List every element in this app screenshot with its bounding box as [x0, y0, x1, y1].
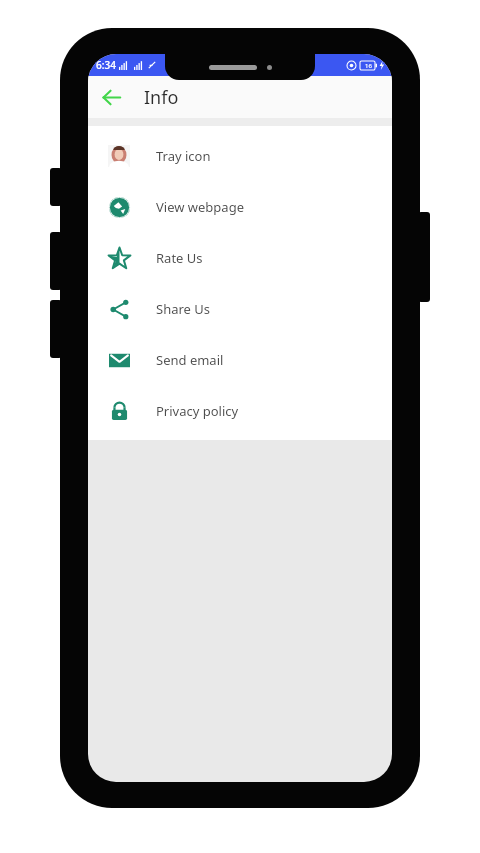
button[interactable]: Share Us — [88, 283, 392, 334]
staticText: Send email — [156, 351, 224, 369]
staticText: 16 — [365, 62, 372, 70]
staticText: Rate Us — [156, 249, 203, 267]
staticText: Share Us — [156, 300, 211, 318]
button[interactable]: View webpage — [88, 181, 392, 232]
button[interactable]: Rate Us — [88, 232, 392, 283]
button[interactable]: Privacy policy — [88, 385, 392, 436]
staticText: View webpage — [156, 198, 244, 216]
button[interactable]: Back — [94, 80, 128, 114]
staticText: 6:34 — [96, 58, 116, 72]
staticText: Privacy policy — [156, 402, 239, 420]
button[interactable]: Send email — [88, 334, 392, 385]
staticText: Info — [144, 85, 179, 110]
staticText: Tray icon — [156, 147, 211, 165]
button[interactable]: Tray icon — [88, 130, 392, 181]
